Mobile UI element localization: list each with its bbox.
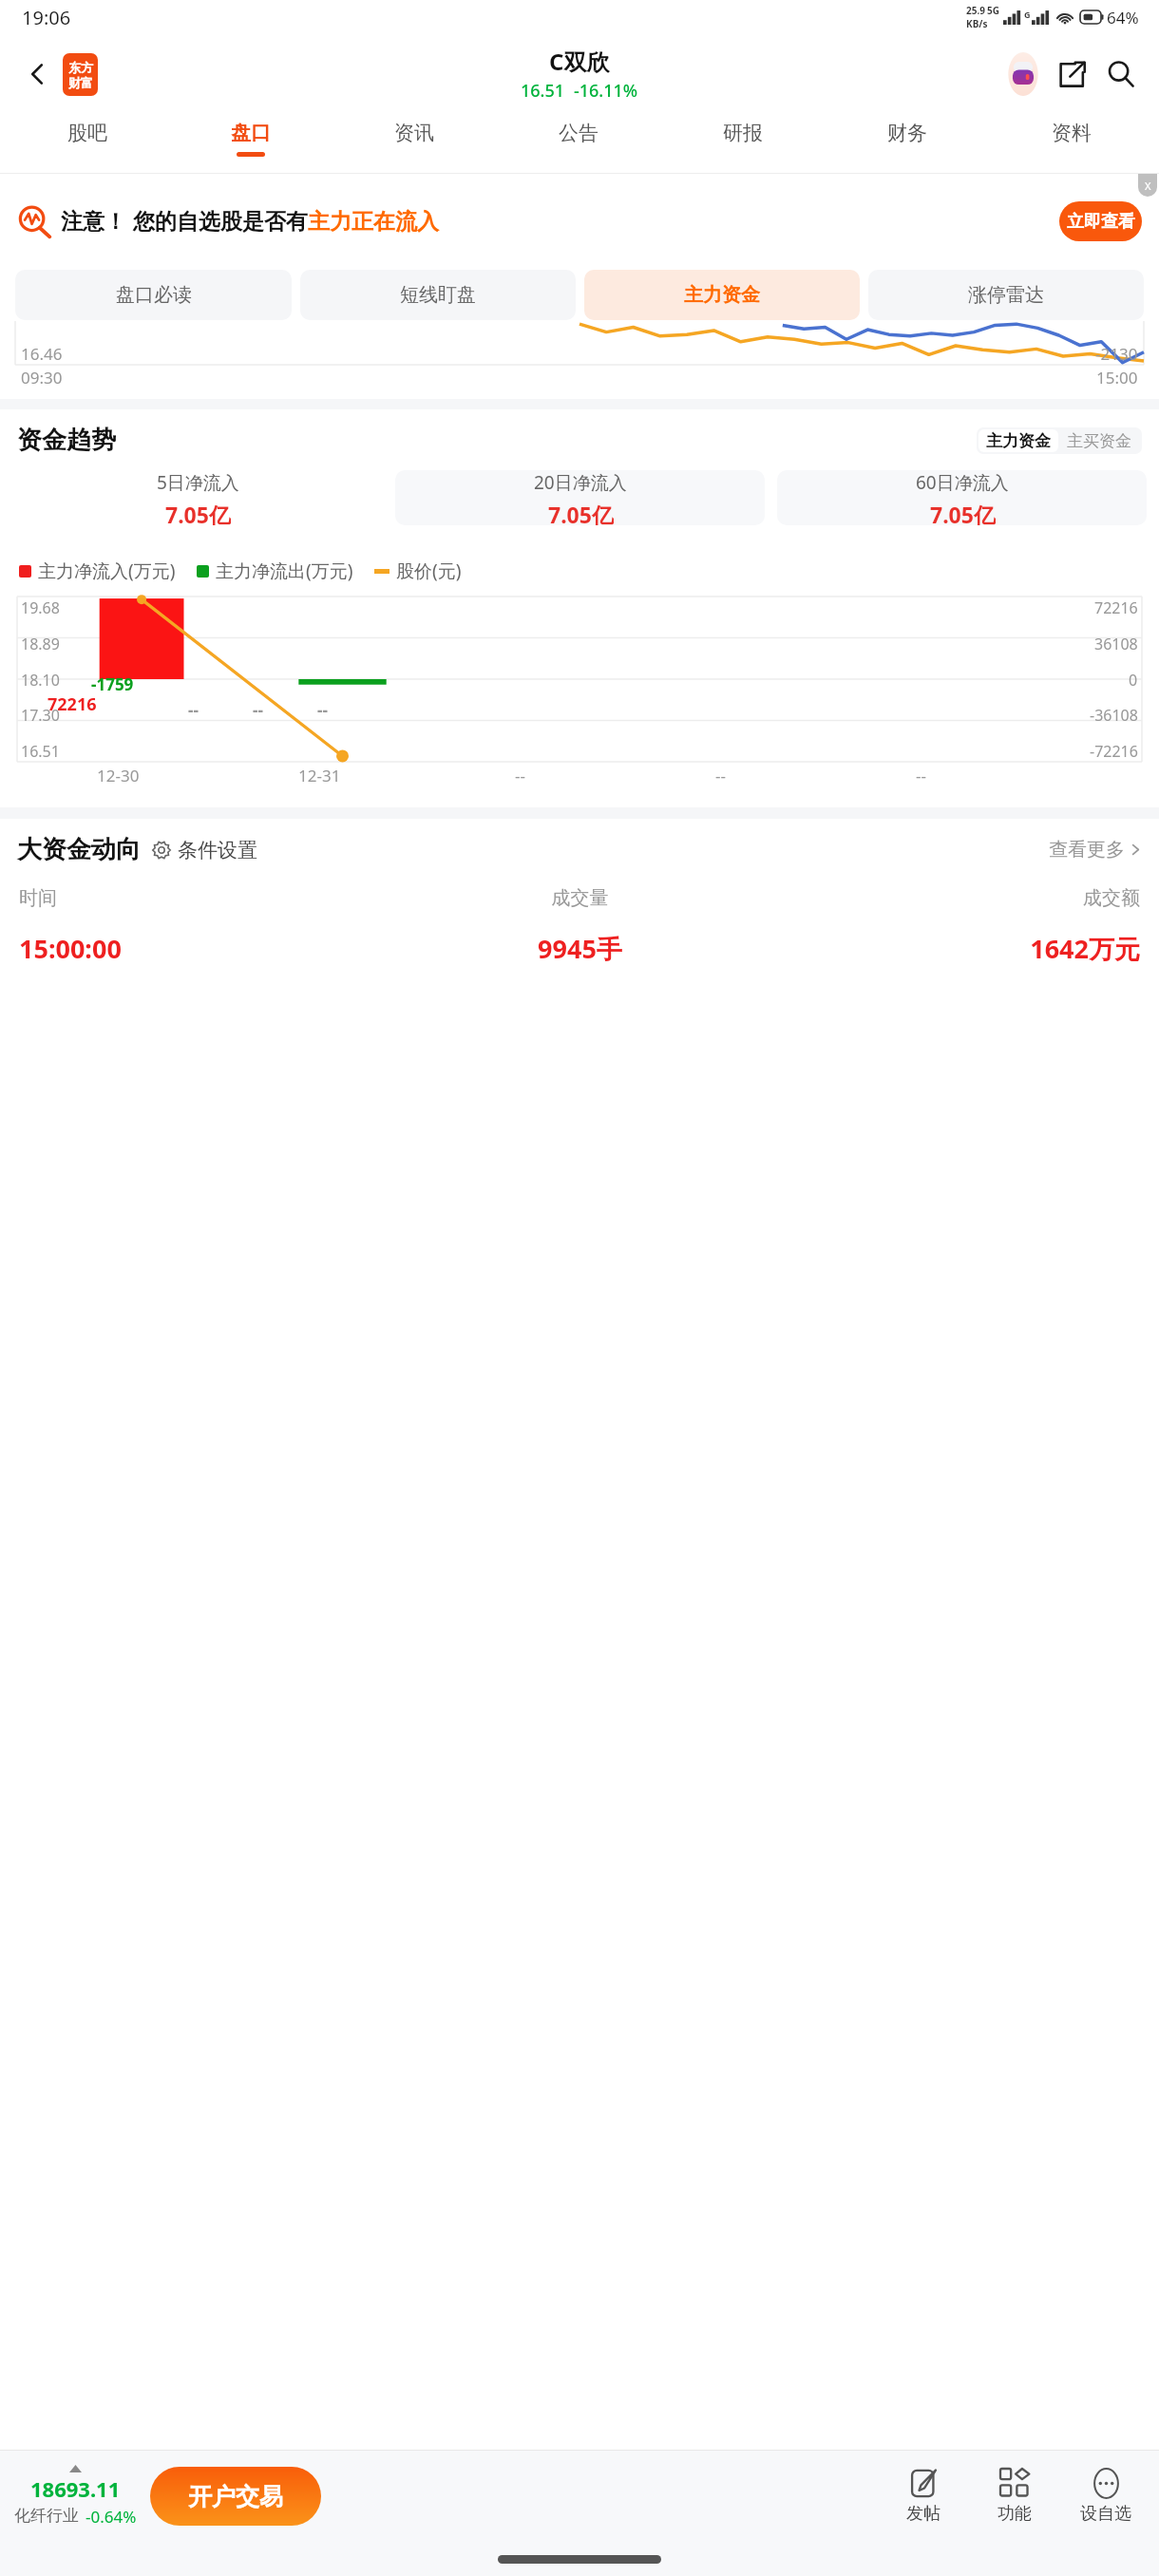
button[interactable]: Close: [1138, 174, 1157, 197]
staticText: 9945手: [393, 931, 767, 966]
button[interactable]: 主力资金: [584, 270, 860, 320]
staticText: KB/s: [966, 17, 988, 30]
staticText: 1642万元: [767, 931, 1140, 966]
staticText: 主力正在流入: [308, 208, 439, 236]
button[interactable]: 财务: [825, 114, 989, 173]
staticText: --: [916, 765, 926, 786]
button[interactable]: 涨停雷达: [868, 270, 1144, 320]
staticText: --: [515, 765, 525, 786]
staticText: 16.51: [521, 79, 565, 103]
button[interactable]: 盘口: [169, 114, 332, 173]
button[interactable]: 研报: [660, 114, 825, 173]
button[interactable]: 5日净流入: [12, 470, 383, 525]
staticText: 盘口必读: [116, 283, 192, 307]
staticText: 资料: [1052, 121, 1092, 145]
button[interactable]: Share: [1047, 49, 1096, 99]
staticText: 短线盯盘: [400, 283, 476, 307]
staticText: X: [1145, 179, 1151, 193]
staticText: 资讯: [394, 121, 434, 145]
staticText: 主力资金: [986, 431, 1051, 451]
staticText: G: [1024, 9, 1031, 20]
staticText: 64%: [1107, 7, 1139, 28]
staticText: 您的自选股是否有: [133, 208, 308, 236]
staticText: -2130: [1095, 343, 1138, 365]
staticText: 15:00: [1096, 367, 1138, 388]
staticText: 条件设置: [178, 838, 257, 862]
button[interactable]: AI助手: [999, 50, 1047, 98]
button[interactable]: 开户交易: [150, 2467, 321, 2526]
staticText: 25.9: [966, 4, 985, 17]
button[interactable]: 资讯: [332, 114, 496, 173]
staticText: 60日净流入: [916, 470, 1009, 495]
staticText: 设自选: [1080, 2503, 1131, 2525]
staticText: --: [188, 699, 199, 721]
staticText: -16.11%: [574, 79, 638, 103]
staticText: 发帖: [906, 2503, 940, 2525]
button[interactable]: 发帖: [878, 2469, 969, 2525]
staticText: 研报: [723, 121, 763, 145]
staticText: 主力净流入(万元): [38, 559, 176, 583]
button[interactable]: 盘口必读: [15, 270, 292, 320]
button[interactable]: 公告: [496, 114, 660, 173]
staticText: 资金趋势: [17, 425, 116, 456]
button[interactable]: 主力资金: [978, 429, 1058, 452]
staticText: 19.68: [21, 597, 60, 618]
staticText: 09:30: [21, 367, 63, 388]
button[interactable]: 18693.11: [13, 2465, 137, 2528]
staticText: 5G: [987, 4, 999, 17]
staticText: 18.89: [21, 634, 60, 654]
staticText: 涨停雷达: [968, 283, 1044, 307]
staticText: 12-31: [298, 765, 341, 786]
staticText: 16.51: [21, 741, 60, 762]
staticText: 36108: [1094, 634, 1138, 654]
staticText: 化纤行业: [14, 2506, 79, 2526]
button[interactable]: 东方财富: [63, 53, 98, 96]
button[interactable]: Back: [15, 51, 61, 97]
button[interactable]: 20日净流入: [395, 470, 765, 525]
staticText: 0: [1129, 670, 1138, 691]
staticText: --: [715, 765, 726, 786]
staticText: 15:00:00: [19, 931, 393, 966]
staticText: -1759: [91, 673, 134, 695]
staticText: 立即查看: [1067, 211, 1135, 233]
staticText: 财务: [887, 121, 927, 145]
button[interactable]: 功能: [969, 2469, 1060, 2525]
staticText: 主买资金: [1067, 431, 1131, 451]
staticText: 财富: [68, 75, 93, 90]
staticText: 12-30: [97, 765, 140, 786]
staticText: 18.10: [21, 670, 60, 691]
staticText: 17.30: [21, 705, 60, 726]
staticText: 大资金动向: [17, 834, 141, 865]
staticText: 7.05亿: [930, 500, 996, 525]
button[interactable]: 立即查看: [1059, 201, 1142, 241]
staticText: 开户交易: [188, 2482, 283, 2511]
staticText: 7.05亿: [165, 500, 231, 525]
button[interactable]: 主买资金: [1058, 429, 1140, 452]
staticText: 成交量: [393, 886, 767, 910]
button[interactable]: 资料: [989, 114, 1153, 173]
staticText: 19:06: [22, 5, 71, 30]
staticText: -36108: [1090, 705, 1138, 726]
button[interactable]: Search: [1096, 49, 1146, 99]
staticText: 查看更多: [1049, 838, 1125, 862]
staticText: 18693.11: [30, 2474, 121, 2503]
staticText: --: [317, 699, 328, 721]
staticText: C双欣: [549, 46, 610, 77]
staticText: 16.46: [21, 343, 63, 365]
button[interactable]: 短线盯盘: [300, 270, 576, 320]
staticText: 股价(元): [396, 559, 462, 583]
button[interactable]: 查看更多: [1049, 838, 1142, 862]
staticText: 东方: [68, 60, 93, 75]
button[interactable]: 条件设置: [152, 838, 257, 862]
button[interactable]: 60日净流入: [777, 470, 1147, 525]
staticText: 主力净流出(万元): [216, 559, 353, 583]
staticText: --: [253, 699, 263, 721]
staticText: -72216: [1090, 741, 1138, 762]
staticText: 5日净流入: [157, 470, 239, 495]
button[interactable]: 股吧: [6, 114, 169, 173]
staticText: 20日净流入: [534, 470, 627, 495]
staticText: 盘口: [231, 121, 271, 145]
button[interactable]: 设自选: [1060, 2469, 1151, 2525]
staticText: 72216: [1094, 597, 1138, 618]
staticText: 72216: [47, 692, 97, 716]
